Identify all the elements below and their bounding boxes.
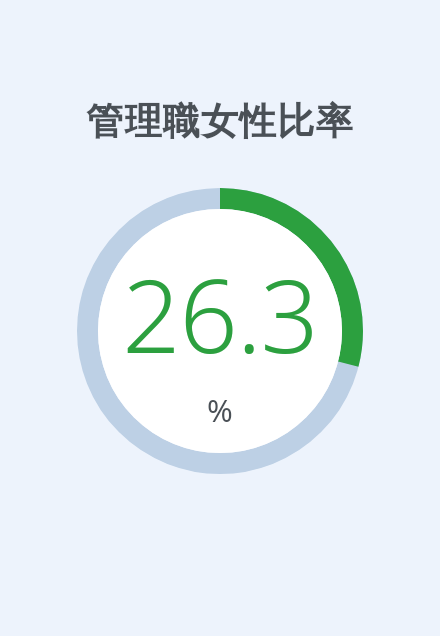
- staticText: %: [207, 389, 233, 431]
- staticText: 管理職女性比率: [86, 98, 354, 145]
- button[interactable]: 管理職女性比率 26.3 パーセント: [77, 188, 363, 474]
- staticText: 26.3: [122, 244, 318, 383]
- button[interactable]: 管理職女性比率: [0, 98, 440, 145]
